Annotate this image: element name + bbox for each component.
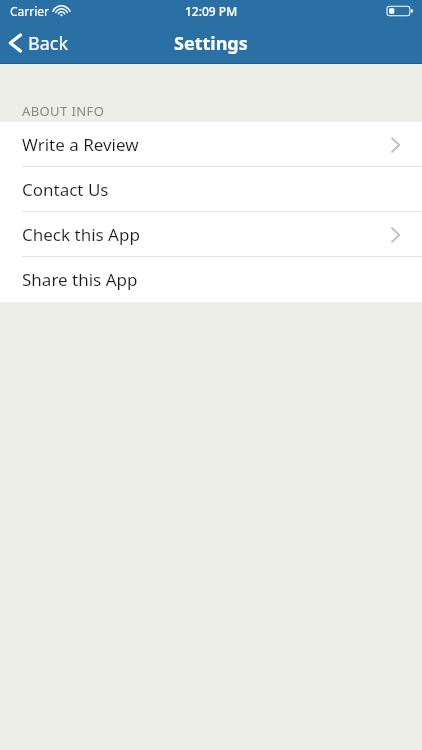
staticText: Contact Us — [22, 178, 109, 201]
button[interactable]: Write a Review — [0, 122, 422, 167]
staticText: 12:09 PM — [185, 3, 238, 19]
staticText: Settings — [174, 31, 248, 56]
staticText: ABOUT INFO — [22, 102, 105, 120]
staticText: Check this App — [22, 223, 140, 246]
staticText: Carrier — [10, 3, 50, 19]
button[interactable]: Contact Us — [0, 167, 422, 212]
button[interactable]: Share this App — [0, 257, 422, 302]
staticText: Share this App — [22, 268, 138, 291]
staticText: Back — [28, 31, 69, 56]
button[interactable]: Check this App — [0, 212, 422, 257]
staticText: Write a Review — [22, 133, 139, 156]
button[interactable]: Back — [0, 22, 81, 64]
